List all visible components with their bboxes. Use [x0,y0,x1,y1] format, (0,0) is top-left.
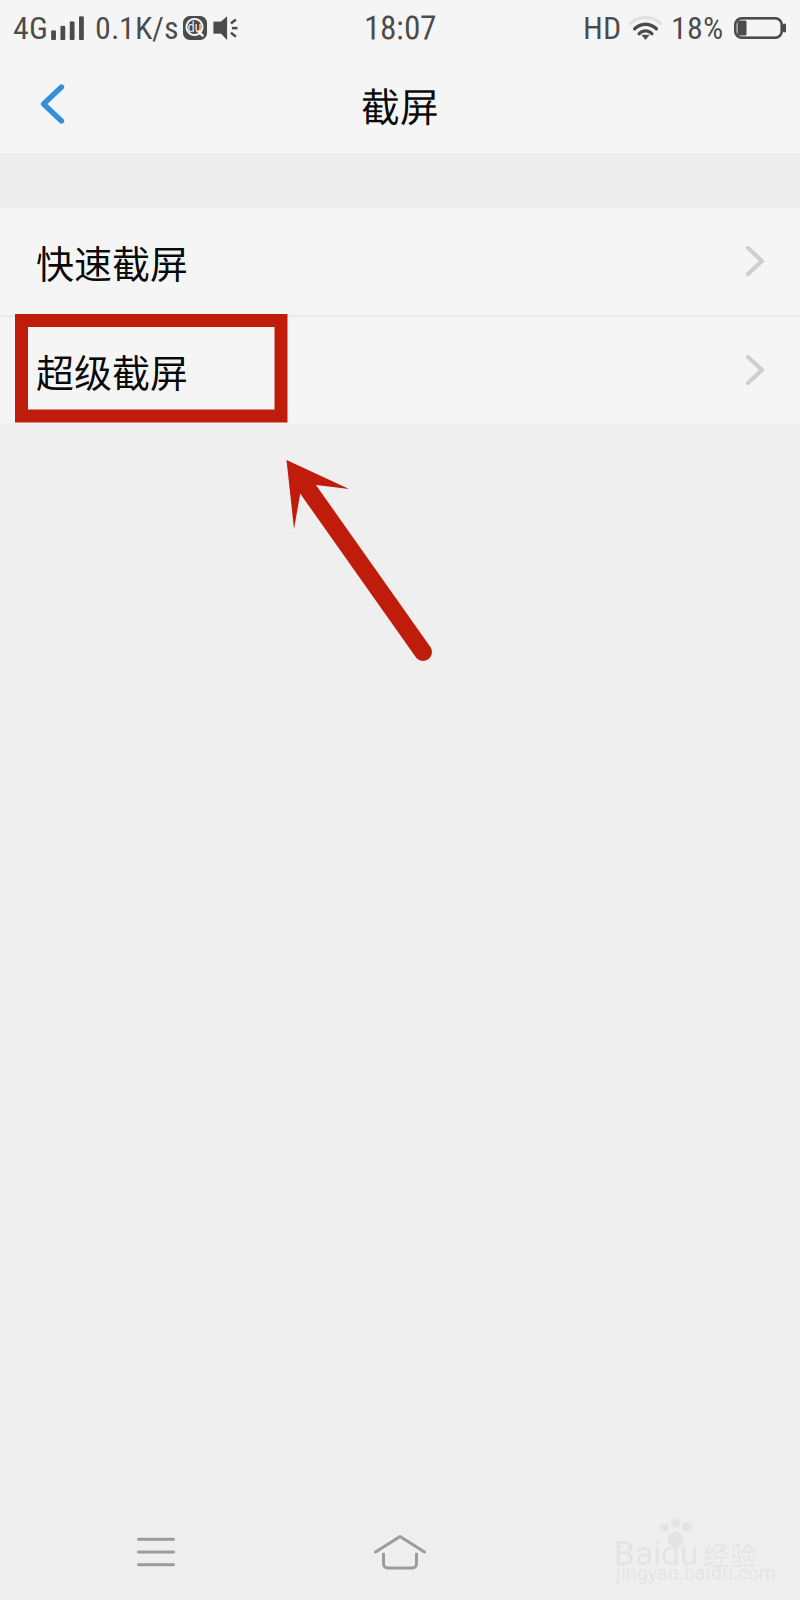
button[interactable]: Recent apps [108,1510,204,1594]
button[interactable]: Home [352,1510,448,1594]
staticText: 快速截屏 [36,234,188,289]
staticText: 经验 [703,1534,757,1573]
staticText: 18% [671,9,723,47]
staticText: 截屏 [361,76,439,132]
staticText: 超级截屏 [36,343,188,398]
staticText: 0.1K/s [95,9,179,47]
staticText: Baidu [614,1534,698,1573]
button[interactable]: 快速截屏 [0,208,800,315]
button[interactable]: Back [0,56,106,153]
staticText: du [187,18,201,36]
staticText: jingyan.baidu.com [616,1562,776,1585]
button[interactable]: 超级截屏 [0,317,800,424]
staticText: HD [583,9,621,47]
staticText: 4G [13,9,48,47]
staticText: 18:07 [364,8,436,48]
